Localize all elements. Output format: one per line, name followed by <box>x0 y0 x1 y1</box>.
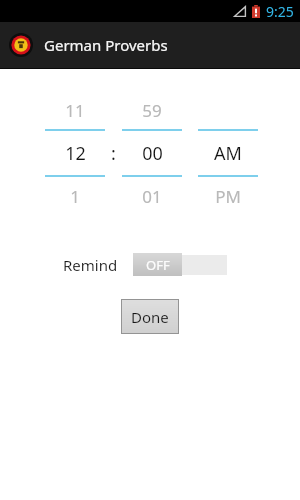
staticText: 11 <box>65 99 85 122</box>
staticText: : <box>111 141 116 166</box>
staticText: 1 <box>70 185 80 208</box>
button[interactable]: 11 <box>45 97 105 123</box>
button[interactable]: 59 <box>122 97 182 123</box>
staticText: Done <box>131 307 169 327</box>
staticText: German Proverbs <box>44 35 168 55</box>
staticText: 01 <box>142 185 162 208</box>
button[interactable]: 00 <box>122 131 182 175</box>
button[interactable]: 01 <box>122 183 182 209</box>
button[interactable]: PM <box>198 183 258 209</box>
staticText: Remind <box>63 255 118 275</box>
staticText: 59 <box>142 99 162 122</box>
staticText: AM <box>214 141 242 166</box>
button[interactable]: Done <box>122 300 178 333</box>
button[interactable]: 1 <box>45 183 105 209</box>
button[interactable]: Remind, off <box>133 253 227 276</box>
staticText: PM <box>215 185 241 208</box>
button[interactable]: AM <box>198 131 258 175</box>
staticText: 12 <box>65 141 86 166</box>
staticText: 9:25 <box>266 2 294 21</box>
staticText: 00 <box>142 141 163 166</box>
staticText: OFF <box>146 256 170 274</box>
button[interactable]: 12 <box>45 131 105 175</box>
